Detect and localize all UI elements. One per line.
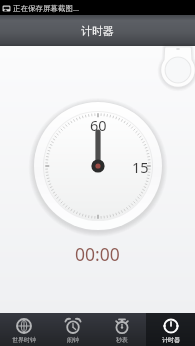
staticText: 闹钟	[67, 336, 79, 344]
staticText: 计时器	[162, 336, 180, 344]
button[interactable]: 秒表	[97, 313, 146, 346]
button[interactable]: 计时器	[146, 313, 195, 346]
button[interactable]: 世界时钟	[0, 313, 48, 346]
staticText: 00:00	[75, 242, 120, 264]
staticText: 秒表	[116, 336, 128, 344]
staticText: 60	[90, 115, 107, 135]
button[interactable]: 闹钟	[48, 313, 97, 346]
staticText: 15	[132, 157, 149, 177]
staticText: 世界时钟	[12, 336, 36, 344]
staticText: 正在保存屏幕截图...	[13, 3, 80, 13]
staticText: 计时器	[81, 24, 114, 38]
